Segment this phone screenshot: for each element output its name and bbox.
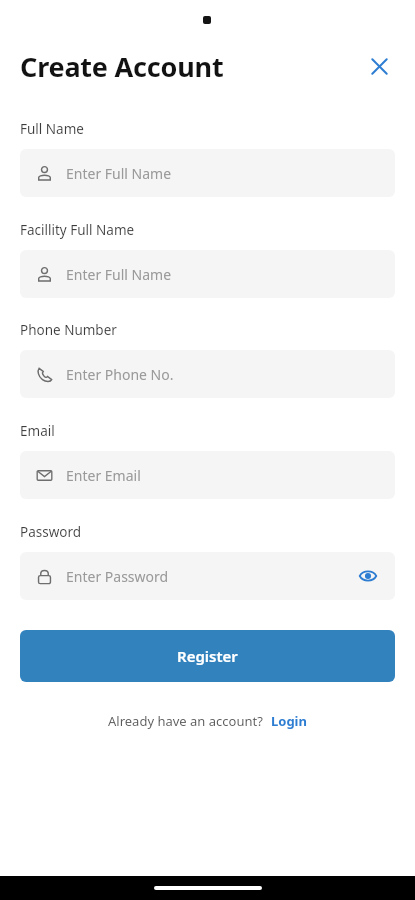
staticText: Create Account [20, 48, 224, 85]
button[interactable]: Enter Password [20, 552, 395, 600]
button[interactable]: Enter Phone No. [20, 350, 395, 398]
staticText: Enter Full Name [66, 265, 172, 284]
staticText: Enter Password [66, 567, 169, 586]
button[interactable]: Register [20, 630, 395, 682]
staticText: Phone Number [20, 321, 117, 339]
staticText: Already have an account? [108, 712, 263, 730]
staticText: Login [271, 712, 307, 730]
staticText: Enter Full Name [66, 164, 172, 183]
button[interactable]: Enter Full Name [20, 149, 395, 197]
button[interactable]: Login [270, 710, 308, 732]
staticText: Enter Email [66, 466, 141, 485]
staticText: Full Name [20, 120, 84, 138]
staticText: Enter Phone No. [66, 365, 174, 384]
button[interactable]: Enter Email [20, 451, 395, 499]
button[interactable]: Show password [355, 563, 381, 589]
staticText: Email [20, 422, 55, 440]
button[interactable]: Close [361, 48, 397, 84]
staticText: Password [20, 523, 82, 541]
button[interactable]: Enter Full Name [20, 250, 395, 298]
staticText: Register [177, 646, 238, 666]
staticText: Facillity Full Name [20, 221, 135, 239]
